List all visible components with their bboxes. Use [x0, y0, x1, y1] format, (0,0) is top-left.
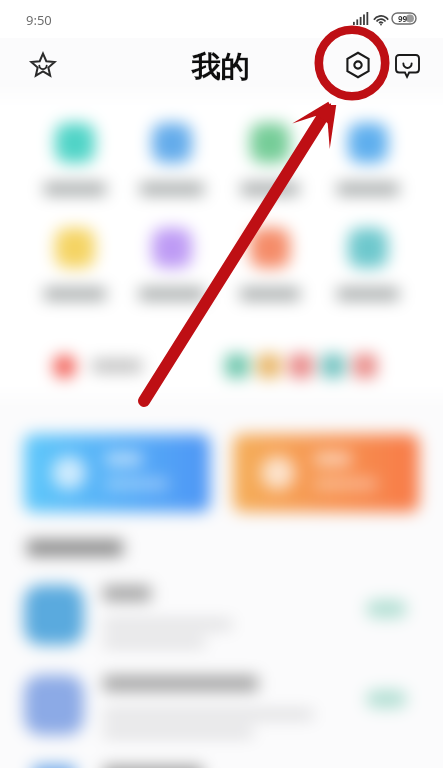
button[interactable]: Favorites — [22, 45, 62, 85]
staticText: 我的 — [191, 49, 249, 86]
button[interactable] — [0, 758, 443, 768]
button[interactable] — [319, 123, 417, 195]
staticText: 9:50 — [26, 11, 52, 29]
button[interactable] — [221, 228, 319, 300]
button[interactable] — [221, 123, 319, 195]
button[interactable] — [26, 228, 123, 300]
button[interactable] — [26, 123, 123, 195]
button[interactable] — [233, 434, 419, 512]
button[interactable]: Messages — [387, 45, 427, 85]
button[interactable] — [0, 578, 443, 668]
button[interactable] — [53, 338, 377, 394]
staticText: 99 — [398, 13, 408, 24]
button[interactable]: Settings — [338, 45, 378, 85]
button[interactable] — [366, 600, 407, 618]
button[interactable] — [0, 668, 443, 758]
button[interactable] — [123, 228, 221, 300]
button[interactable] — [24, 434, 210, 512]
button[interactable] — [366, 690, 407, 708]
button[interactable] — [319, 228, 417, 300]
button[interactable] — [123, 123, 221, 195]
